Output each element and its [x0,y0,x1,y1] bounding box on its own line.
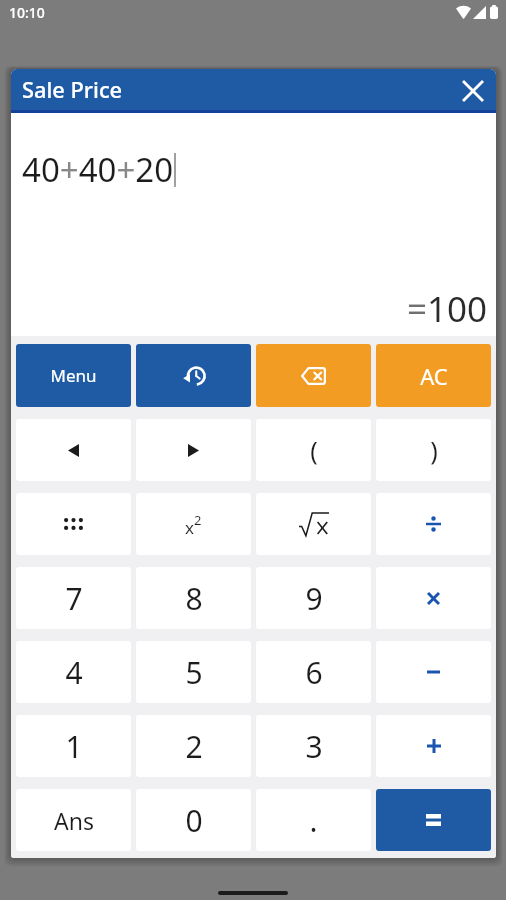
staticText: AC [420,361,448,391]
staticText: 5 [185,652,203,693]
button[interactable]: AC [376,344,491,407]
staticText: . [309,800,318,841]
staticText: Sale Price [22,75,123,105]
button[interactable]: 0 [136,789,251,851]
button[interactable]: Menu [16,344,131,407]
staticText: 9 [305,578,323,619]
staticText: 7 [65,578,83,619]
staticText: =100 [407,285,488,333]
staticText: ( [310,433,318,467]
staticText: x2 [185,511,202,538]
button[interactable]: 8 [136,567,251,629]
button[interactable]: 6 [256,641,371,703]
button[interactable]: More [16,493,131,555]
button[interactable]: Square root [256,493,371,555]
staticText: 40+40+20 [22,147,174,192]
button[interactable]: Plus [376,715,491,777]
staticText: 10:10 [9,3,45,22]
button[interactable]: Divide [376,493,491,555]
button[interactable]: Multiply [376,567,491,629]
staticText: 1 [65,726,83,767]
staticText: Ans [54,805,94,836]
button[interactable]: Move right [136,419,251,481]
button[interactable]: 3 [256,715,371,777]
staticText: Menu [50,364,97,387]
staticText: 4 [65,652,83,693]
button[interactable]: . [256,789,371,851]
button[interactable]: 5 [136,641,251,703]
button[interactable]: Close [452,70,494,112]
button[interactable]: ) [376,419,491,481]
staticText: 3 [305,726,323,767]
button[interactable]: Move left [16,419,131,481]
staticText: 8 [185,578,203,619]
button[interactable]: Ans [16,789,131,851]
button[interactable]: 2 [136,715,251,777]
staticText: ) [430,433,438,467]
staticText: 6 [305,652,323,693]
button[interactable]: 7 [16,567,131,629]
button[interactable]: Square [136,493,251,555]
button[interactable]: Minus [376,641,491,703]
button[interactable]: ( [256,419,371,481]
button[interactable]: Equals [376,789,491,851]
button[interactable]: 1 [16,715,131,777]
button[interactable]: 4 [16,641,131,703]
staticText: 0 [185,800,203,841]
staticText: 2 [185,726,203,767]
button[interactable]: History [136,344,251,407]
button[interactable]: Backspace [256,344,371,407]
button[interactable]: 9 [256,567,371,629]
